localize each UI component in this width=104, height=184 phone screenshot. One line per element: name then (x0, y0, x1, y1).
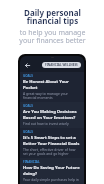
staticText: A great way to manage your financial mom… (23, 91, 81, 100)
button[interactable]: GOALS (20, 102, 84, 128)
staticText: The short, effective driver of how set y… (23, 147, 81, 156)
button[interactable]: Back (23, 61, 31, 69)
button[interactable]: GOALS (20, 72, 84, 102)
staticText: Are You Making Decisions Based on Your E… (23, 109, 81, 120)
staticText: Be Honest About Your Pocket (23, 79, 81, 90)
button[interactable]: FINANCIAL WELLNESS (42, 62, 81, 68)
staticText: GOALS (23, 130, 33, 134)
staticText: Find out how to invest wisely (23, 121, 69, 126)
staticText: FINANCIAL (23, 160, 40, 164)
staticText: FINANCIAL WELLNESS (45, 63, 78, 67)
staticText: to help you manage your finances better (19, 28, 86, 45)
staticText: Daily personal financial tips (24, 7, 81, 26)
button[interactable]: FINANCIAL (20, 158, 84, 184)
staticText: GOALS (23, 74, 33, 78)
staticText: GOALS (23, 104, 33, 108)
staticText: How Do Saving Your Future doing? (23, 165, 81, 176)
staticText: It's 5 Smart Steps to set a Better Your … (23, 135, 81, 146)
button[interactable]: GOALS (20, 128, 84, 158)
staticText: Your daily simple purchases help in sear… (23, 177, 81, 182)
